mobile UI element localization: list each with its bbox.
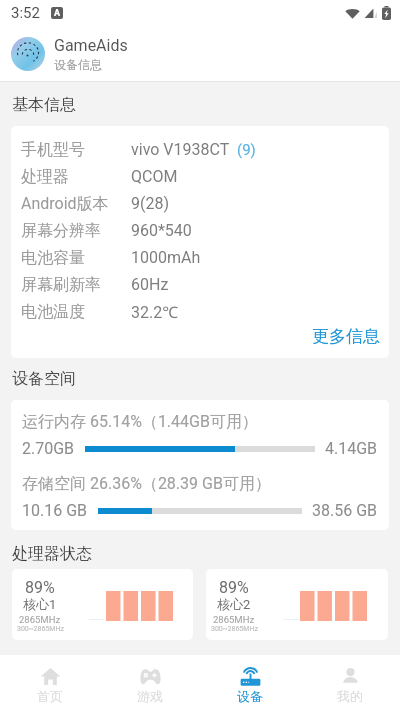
staticText: 运行内存 65.14%（1.44GB可用） (22, 412, 258, 432)
staticText: 我的 (337, 688, 363, 704)
staticText: 38.56 GB (312, 501, 378, 520)
staticText: 手机型号 (21, 140, 131, 160)
staticText: 89% (25, 578, 55, 597)
staticText: Android版本 (21, 194, 131, 214)
staticText: A (54, 8, 61, 19)
staticText: 电池容量 (21, 248, 131, 268)
staticText: 屏幕分辨率 (21, 221, 131, 241)
staticText: 屏幕刷新率 (21, 275, 131, 295)
staticText: 核心1 (23, 596, 57, 612)
staticText: 1000mAh (131, 248, 201, 267)
other: Device (240, 666, 261, 687)
button[interactable]: 更多信息 (312, 325, 389, 358)
staticText: QCOM (131, 167, 178, 186)
staticText: 处理器状态 (12, 544, 92, 564)
staticText: 设备信息 (54, 57, 102, 72)
button[interactable]: Device (200, 655, 300, 712)
other: Profile (340, 666, 361, 687)
staticText: 32.2℃ (131, 301, 179, 323)
staticText: 核心2 (217, 596, 251, 612)
button[interactable]: Home (0, 655, 100, 712)
staticText: 处理器 (21, 167, 131, 187)
staticText: vivo V1938CT (131, 140, 230, 159)
staticText: 9(28) (131, 194, 170, 213)
staticText: 设备 (237, 688, 263, 704)
staticText: 首页 (37, 688, 63, 704)
staticText: 电池温度 (21, 302, 131, 322)
staticText: 300~2865MHz (17, 625, 64, 633)
staticText: (9) (237, 141, 256, 159)
button[interactable]: Profile (300, 655, 400, 712)
staticText: 设备空间 (12, 369, 76, 389)
button[interactable]: Games (100, 655, 200, 712)
other: Games (140, 666, 161, 687)
staticText: GameAids (54, 36, 128, 55)
staticText: 游戏 (137, 688, 163, 704)
staticText: 300~2865MHz (211, 625, 258, 633)
staticText: 基本信息 (12, 95, 76, 115)
staticText: 2865MHz (213, 614, 255, 625)
staticText: 2.70GB (22, 439, 75, 458)
staticText: 10.16 GB (22, 501, 88, 520)
staticText: 4.14GB (325, 439, 378, 458)
other: Home (40, 666, 61, 687)
staticText: 存储空间 26.36%（28.39 GB可用） (22, 474, 271, 494)
staticText: 960*540 (131, 221, 192, 240)
staticText: 2865MHz (19, 614, 61, 625)
staticText: 89% (219, 578, 249, 597)
staticText: 3:52 (11, 4, 40, 22)
staticText: 60Hz (131, 275, 169, 294)
